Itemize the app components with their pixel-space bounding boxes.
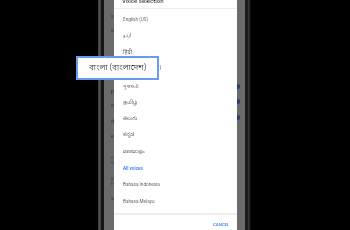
staticText: Bahasa Melayu	[123, 199, 155, 204]
staticText: e	[111, 133, 114, 139]
button[interactable]: Bahasa Indonesia	[114, 176, 237, 192]
staticText: All voices	[123, 166, 143, 171]
button[interactable]: اردو	[114, 27, 237, 43]
staticText: CANCEL	[213, 222, 230, 227]
button[interactable]: മലയാളം	[114, 144, 237, 160]
button[interactable]: বাংলা (বাংলাদেশ)	[76, 56, 159, 80]
button[interactable]: Voice selection	[122, 0, 164, 4]
button[interactable]: All voices	[114, 160, 237, 176]
button[interactable]: English (US)	[114, 11, 237, 27]
staticText: e	[111, 73, 114, 79]
staticText: Bahasa Indonesia	[123, 182, 160, 187]
button[interactable]: Bahasa Melayu	[114, 193, 237, 209]
staticText: বাংলা (বাংলাদেশ)	[123, 64, 161, 71]
staticText: n	[111, 59, 114, 65]
button[interactable]: தமிழ்	[114, 94, 237, 110]
staticText: తెలుగు	[123, 115, 138, 122]
staticText: ಕನ್ನಡ	[123, 132, 135, 139]
button[interactable]: বাংলা (বাংলাদেশ)	[114, 59, 237, 75]
button[interactable]: తెలుగు	[114, 110, 237, 126]
staticText: ગુજરાતી	[123, 83, 139, 90]
staticText: n	[111, 180, 114, 186]
button[interactable]: हिंदी	[114, 44, 237, 60]
staticText: اردو	[123, 29, 132, 41]
button[interactable]: ಕನ್ನಡ	[114, 127, 237, 143]
staticText: s	[111, 13, 114, 19]
staticText: o	[111, 102, 114, 108]
staticText: s	[111, 195, 114, 201]
staticText: c	[111, 154, 114, 160]
staticText: p	[111, 88, 114, 94]
staticText: o	[111, 27, 114, 33]
staticText: y	[111, 175, 114, 181]
staticText: தமிழ்	[123, 99, 138, 105]
button[interactable]: ગુજરાતી	[114, 78, 237, 94]
staticText: Voice selection	[122, 0, 164, 4]
staticText: English (US)	[123, 17, 149, 22]
button[interactable]: CANCEL	[210, 218, 233, 230]
staticText: d	[111, 118, 114, 124]
staticText: বাংলা (বাংলাদেশ)	[89, 63, 147, 74]
staticText: മലയാളം	[123, 149, 145, 155]
staticText: हिंदी	[123, 49, 132, 56]
staticText: o	[111, 159, 114, 165]
